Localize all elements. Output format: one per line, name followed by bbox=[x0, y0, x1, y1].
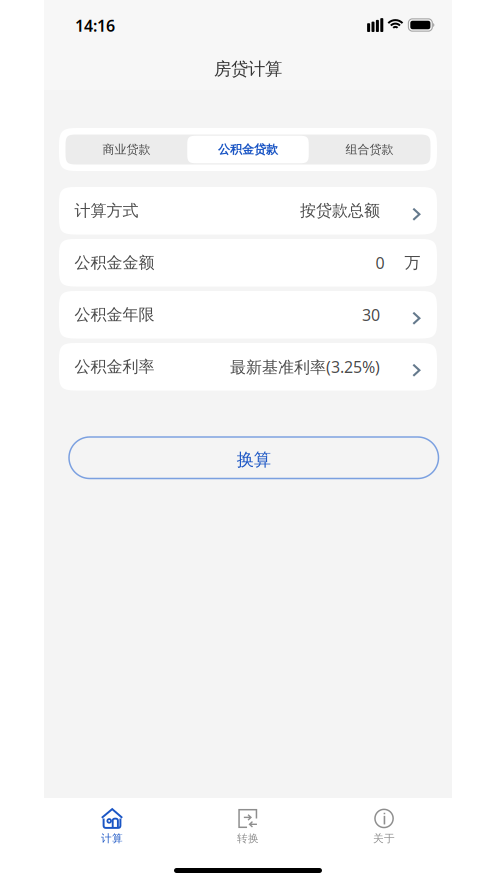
staticText: 14:16 bbox=[75, 15, 115, 36]
button[interactable]: 转换 bbox=[180, 798, 316, 846]
button[interactable]: 换算 bbox=[69, 437, 438, 478]
button[interactable]: 计算 bbox=[44, 798, 180, 846]
staticText: 换算 bbox=[237, 449, 271, 470]
button[interactable]: 公积金金额 bbox=[59, 239, 437, 286]
staticText: 0 bbox=[375, 252, 384, 273]
staticText: 计算方式 bbox=[74, 201, 138, 221]
button[interactable]: 公积金贷款 bbox=[187, 136, 309, 163]
button[interactable]: 计算方式 bbox=[59, 187, 437, 234]
staticText: 商业贷款 bbox=[102, 142, 150, 157]
button[interactable]: 关于 bbox=[316, 798, 452, 846]
staticText: 最新基准利率(3.25%) bbox=[230, 356, 380, 377]
button[interactable]: 组合贷款 bbox=[309, 134, 430, 164]
staticText: 按贷款总额 bbox=[300, 201, 380, 221]
staticText: 公积金金额 bbox=[74, 253, 154, 273]
button[interactable]: 公积金年限 bbox=[59, 291, 437, 338]
staticText: 组合贷款 bbox=[345, 142, 393, 157]
staticText: 万 bbox=[404, 253, 420, 273]
staticText: 关于 bbox=[373, 832, 395, 845]
staticText: 公积金贷款 bbox=[218, 142, 278, 157]
staticText: 计算 bbox=[101, 832, 123, 845]
staticText: 公积金利率 bbox=[74, 357, 154, 377]
staticText: 30 bbox=[362, 304, 380, 325]
staticText: 公积金年限 bbox=[74, 305, 154, 325]
staticText: 转换 bbox=[237, 832, 259, 845]
button[interactable]: 公积金利率 bbox=[59, 343, 437, 390]
button[interactable]: 商业贷款 bbox=[66, 134, 187, 164]
staticText: 房贷计算 bbox=[214, 58, 282, 80]
